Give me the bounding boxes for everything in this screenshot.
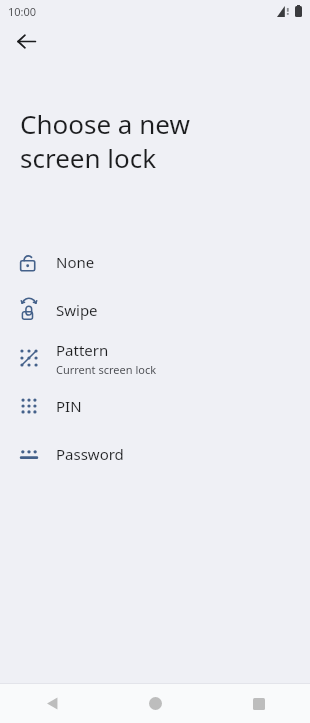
button[interactable]: Back [0,684,104,723]
button[interactable]: Pattern [0,334,310,382]
button[interactable]: None [0,238,310,286]
button[interactable]: Back [8,23,44,59]
staticText: PIN [56,396,82,416]
staticText: Password [56,444,124,464]
staticText: Choose a new screen lock [20,106,290,176]
button[interactable]: Swipe [0,286,310,334]
button[interactable]: Home [104,684,207,723]
staticText: Pattern [56,340,109,360]
button[interactable]: PIN [0,382,310,430]
staticText: None [56,252,95,272]
button[interactable]: Recent apps [207,684,310,723]
staticText: Current screen lock [56,362,157,377]
staticText: Swipe [56,300,98,320]
button[interactable]: Password [0,430,310,478]
staticText: 10:00 [8,4,37,19]
